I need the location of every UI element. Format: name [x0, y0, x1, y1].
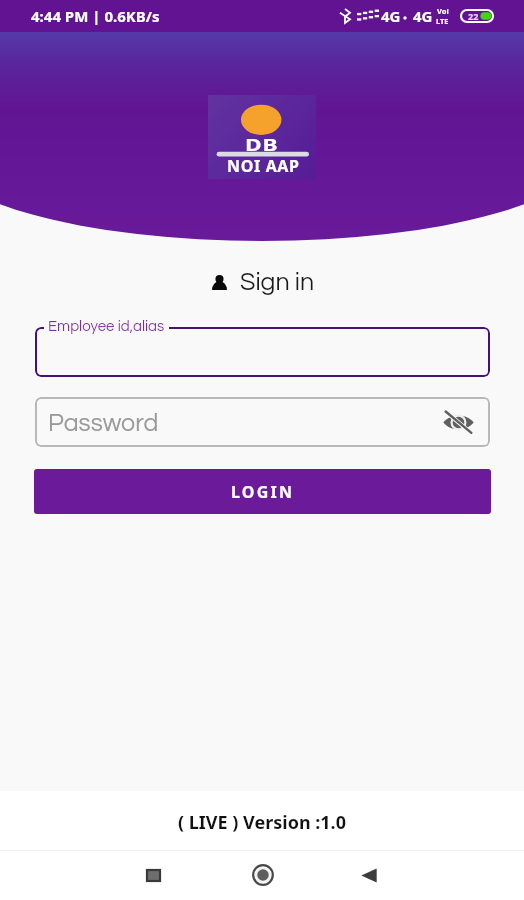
button[interactable]: LOGIN — [34, 469, 491, 514]
button[interactable]: Recents — [131, 853, 175, 897]
staticText: DB — [245, 134, 279, 156]
staticText: 4G — [381, 6, 401, 26]
button[interactable]: Password — [35, 397, 490, 447]
staticText: 4:44 PM | 0.6KB/s — [31, 6, 160, 26]
staticText: 22 — [468, 10, 479, 22]
button[interactable]: Back — [347, 853, 391, 897]
staticText: LTE — [436, 16, 449, 26]
button[interactable]: Home — [241, 853, 285, 897]
button[interactable]: Show password — [440, 404, 476, 440]
staticText: Sign in — [240, 269, 315, 295]
staticText: Employee id,alias — [48, 319, 165, 334]
staticText: 4G — [413, 6, 433, 26]
button[interactable] — [35, 327, 490, 377]
staticText: LOGIN — [231, 481, 295, 503]
staticText: NOI AAP — [227, 155, 300, 177]
staticText: Password — [48, 410, 159, 436]
staticText: Vol — [437, 6, 449, 16]
staticText: ( LIVE ) Version :1.0 — [178, 810, 346, 835]
